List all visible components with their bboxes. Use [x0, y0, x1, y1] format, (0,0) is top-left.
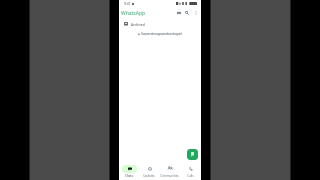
- staticText: WhatsApp: [121, 10, 146, 17]
- staticText: Updates: [143, 174, 155, 178]
- button[interactable]: Updates: [139, 162, 159, 180]
- staticText: Your personal messages are end-to-end en…: [141, 32, 182, 36]
- button[interactable]: New chat: [187, 149, 198, 160]
- staticText: Communities: [160, 174, 179, 178]
- staticText: Calls: [187, 174, 194, 178]
- button[interactable]: Archived: [119, 19, 201, 28]
- staticText: Archived: [131, 22, 145, 26]
- button[interactable]: Search: [185, 11, 189, 15]
- button[interactable]: Chats: [119, 162, 139, 180]
- button[interactable]: Communities: [159, 162, 180, 180]
- button[interactable]: Calls: [180, 162, 201, 180]
- staticText: Chats: [125, 174, 133, 178]
- button[interactable]: Meta AI: [177, 11, 181, 15]
- button[interactable]: More options: [194, 11, 198, 15]
- staticText: 9:41: [124, 1, 131, 6]
